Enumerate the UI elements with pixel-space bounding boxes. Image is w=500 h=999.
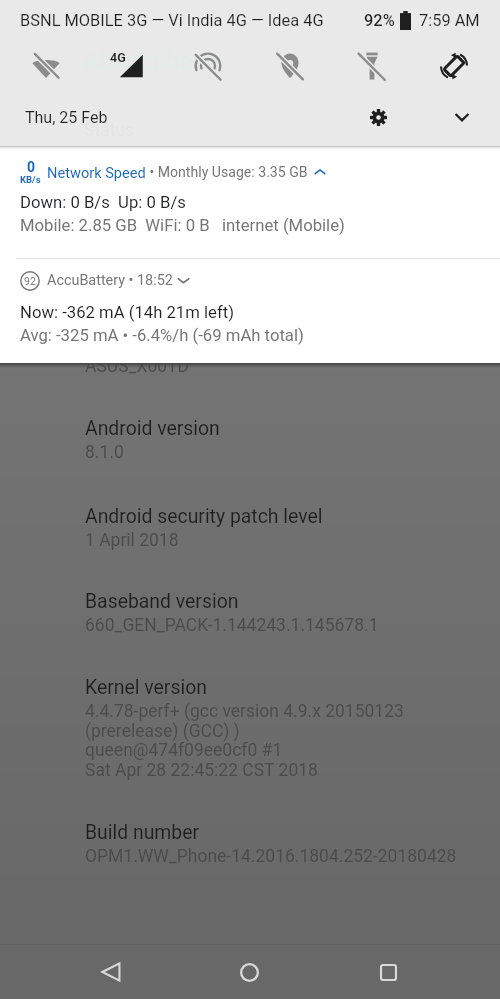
staticText: queen@474f09ee0cf0 #1 <box>85 740 283 761</box>
staticText: 8.1.0 <box>85 442 124 463</box>
button[interactable]: Mobile data 4G <box>86 40 167 92</box>
staticText: Thu, 25 Feb <box>25 108 108 127</box>
staticText: Avg: -325 mA • -6.4%/h (-69 mAh total) <box>20 326 304 346</box>
button[interactable]: Wi-Fi off <box>5 40 86 92</box>
staticText: Android version <box>85 417 220 440</box>
button[interactable]: Home <box>180 945 319 999</box>
staticText: • Monthly Usage: 3.35 GB <box>146 164 308 181</box>
staticText: (prerelease) (GCC) ) <box>85 721 240 742</box>
staticText: OPM1.WW_Phone-14.2016.1804.252-20180428 <box>85 846 457 867</box>
staticText: 660_GEN_PACK-1.144243.1.145678.1 <box>85 615 379 636</box>
button[interactable]: 92 <box>0 259 500 363</box>
staticText: Mobile: 2.85 GB WiFi: 0 B internet (Mobi… <box>20 216 345 236</box>
staticText: BSNL MOBILE 3G — Vi India 4G — Idea 4G <box>20 11 324 30</box>
staticText: 1 April 2018 <box>85 530 179 551</box>
staticText: 7:59 AM <box>419 11 480 30</box>
button[interactable]: Hotspot off <box>167 40 249 92</box>
staticText: ASUS_X00TD <box>85 356 190 377</box>
staticText: Network Speed <box>47 164 146 181</box>
staticText: Build number <box>85 821 200 844</box>
button[interactable]: Flashlight off <box>331 40 413 92</box>
staticText: Android security patch level <box>85 505 323 528</box>
staticText: 4G <box>110 50 126 65</box>
staticText: 92% <box>364 11 395 30</box>
staticText: 92 <box>24 275 36 287</box>
staticText: Down: 0 B/s Up: 0 B/s <box>20 193 186 213</box>
button[interactable]: Location off <box>249 40 331 92</box>
staticText: Status <box>84 120 135 141</box>
button[interactable]: Back <box>42 945 180 999</box>
staticText: Sat Apr 28 22:45:22 CST 2018 <box>85 760 318 781</box>
staticText: KB/s <box>20 174 41 185</box>
staticText: Now: -362 mA (14h 21m left) <box>20 303 234 323</box>
staticText: 4.4.78-perf+ (gcc version 4.9.x 20150123 <box>85 701 404 722</box>
staticText: About phone <box>83 47 220 75</box>
staticText: AccuBattery • 18:52 <box>47 272 173 289</box>
staticText: 0 <box>27 159 36 175</box>
button[interactable]: Recent apps <box>319 945 458 999</box>
staticText: Kernel version <box>85 676 207 699</box>
button[interactable]: Expand quick settings <box>440 96 484 140</box>
staticText: Baseband version <box>85 590 239 613</box>
button[interactable]: Auto rotate <box>413 40 495 92</box>
button[interactable]: Settings <box>356 96 400 140</box>
button[interactable]: 0 <box>0 147 500 258</box>
